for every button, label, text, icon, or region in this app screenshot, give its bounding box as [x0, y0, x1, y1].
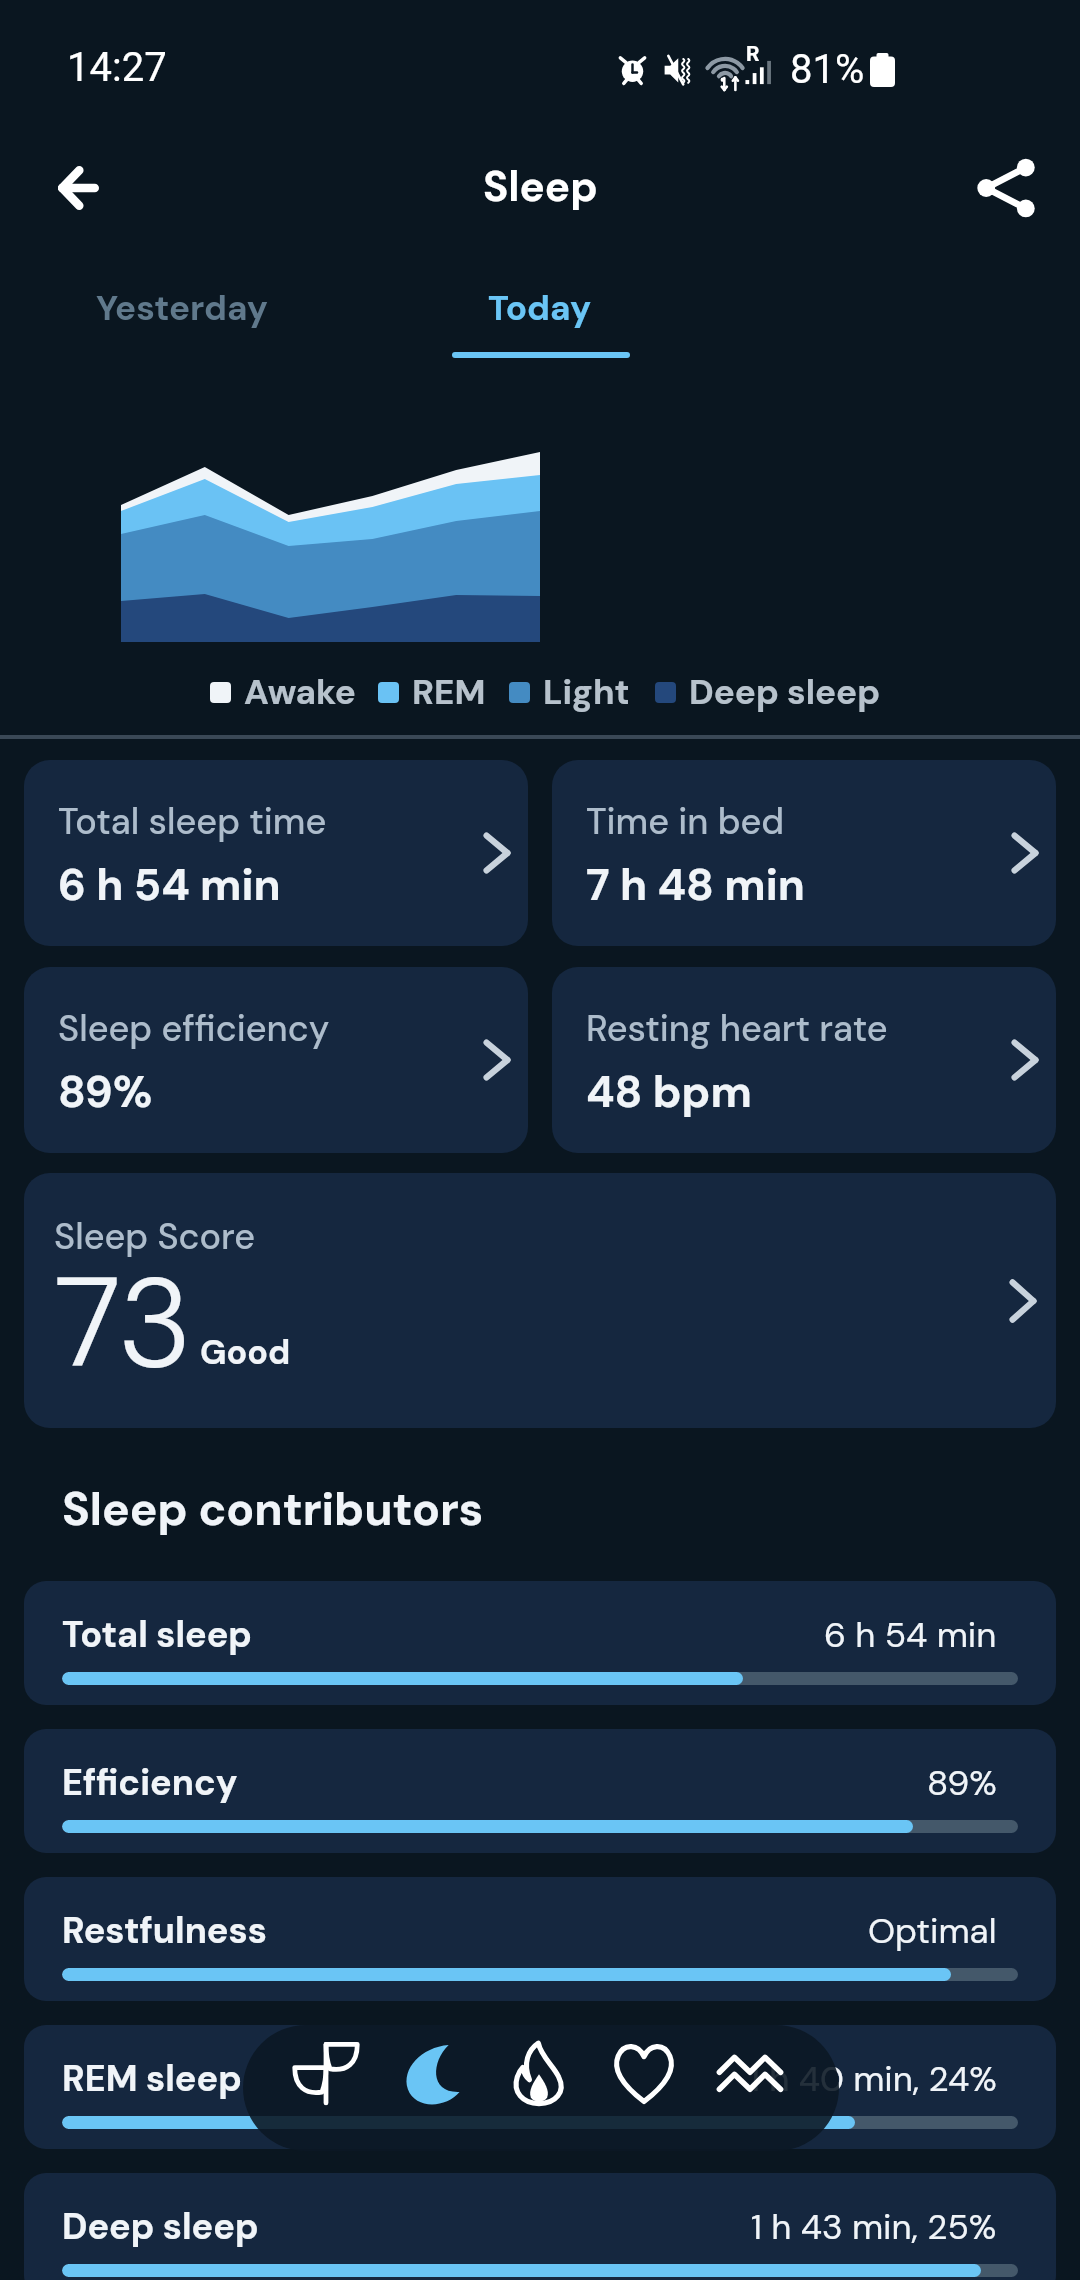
staticText: Deep sleep [62, 2203, 259, 2250]
staticText: Sleep [483, 159, 598, 214]
staticText: Restfulness [62, 1907, 267, 1954]
staticText: Good [200, 1330, 291, 1374]
button[interactable]: Activity [278, 2025, 374, 2121]
staticText: 14:27 [67, 44, 167, 91]
staticText: 1 h 43 min, 25% [751, 2204, 997, 2250]
button[interactable]: REM sleep [24, 2025, 1056, 2149]
button[interactable]: Time in bed [552, 760, 1056, 946]
staticText: 7 h 48 min [586, 856, 805, 913]
staticText: 89% [927, 1760, 997, 1806]
button[interactable]: Stress [702, 2025, 798, 2121]
staticText: Awake [244, 669, 356, 715]
button[interactable]: Share [958, 140, 1054, 236]
staticText: Today [488, 285, 592, 331]
button[interactable]: Heart [596, 2025, 692, 2121]
staticText: REM [412, 669, 486, 715]
staticText: Total sleep [62, 1611, 252, 1658]
button[interactable]: Today [360, 253, 720, 368]
staticText: 6 h 54 min [824, 1612, 997, 1658]
staticText: 81% [790, 46, 865, 93]
staticText: Light [543, 669, 630, 715]
button[interactable]: Efficiency [24, 1729, 1056, 1853]
button[interactable]: Total sleep [24, 1581, 1056, 1705]
staticText: Sleep contributors [62, 1479, 484, 1539]
button[interactable]: Sleep Score [24, 1173, 1056, 1428]
staticText: Resting heart rate [586, 1005, 888, 1052]
staticText: 73 [54, 1241, 192, 1405]
staticText: Sleep efficiency [58, 1005, 330, 1052]
staticText: Optimal [868, 1908, 997, 1954]
staticText: 89% [58, 1063, 153, 1120]
staticText: Efficiency [62, 1759, 238, 1806]
staticText: Deep sleep [689, 669, 881, 715]
staticText: REM sleep [62, 2055, 242, 2102]
button[interactable]: Back [27, 140, 123, 236]
button[interactable]: Restfulness [24, 1877, 1056, 2001]
staticText: 48 bpm [586, 1063, 752, 1120]
button[interactable]: Total sleep time [24, 760, 528, 946]
staticText: R [746, 42, 760, 67]
button[interactable]: Calories [491, 2025, 587, 2121]
staticText: 1 h 40 min, 24% [749, 2056, 997, 2102]
button[interactable]: Yesterday [2, 253, 362, 368]
staticText: Sleep Score [54, 1213, 256, 1260]
staticText: Time in bed [586, 798, 785, 845]
staticText: Yesterday [96, 285, 269, 331]
staticText: 6 h 54 min [58, 856, 281, 913]
staticText: Total sleep time [58, 798, 327, 845]
button[interactable]: Resting heart rate [552, 967, 1056, 1153]
button[interactable]: Sleep [383, 2025, 479, 2121]
button[interactable]: Sleep efficiency [24, 967, 528, 1153]
button[interactable]: Deep sleep [24, 2173, 1056, 2280]
